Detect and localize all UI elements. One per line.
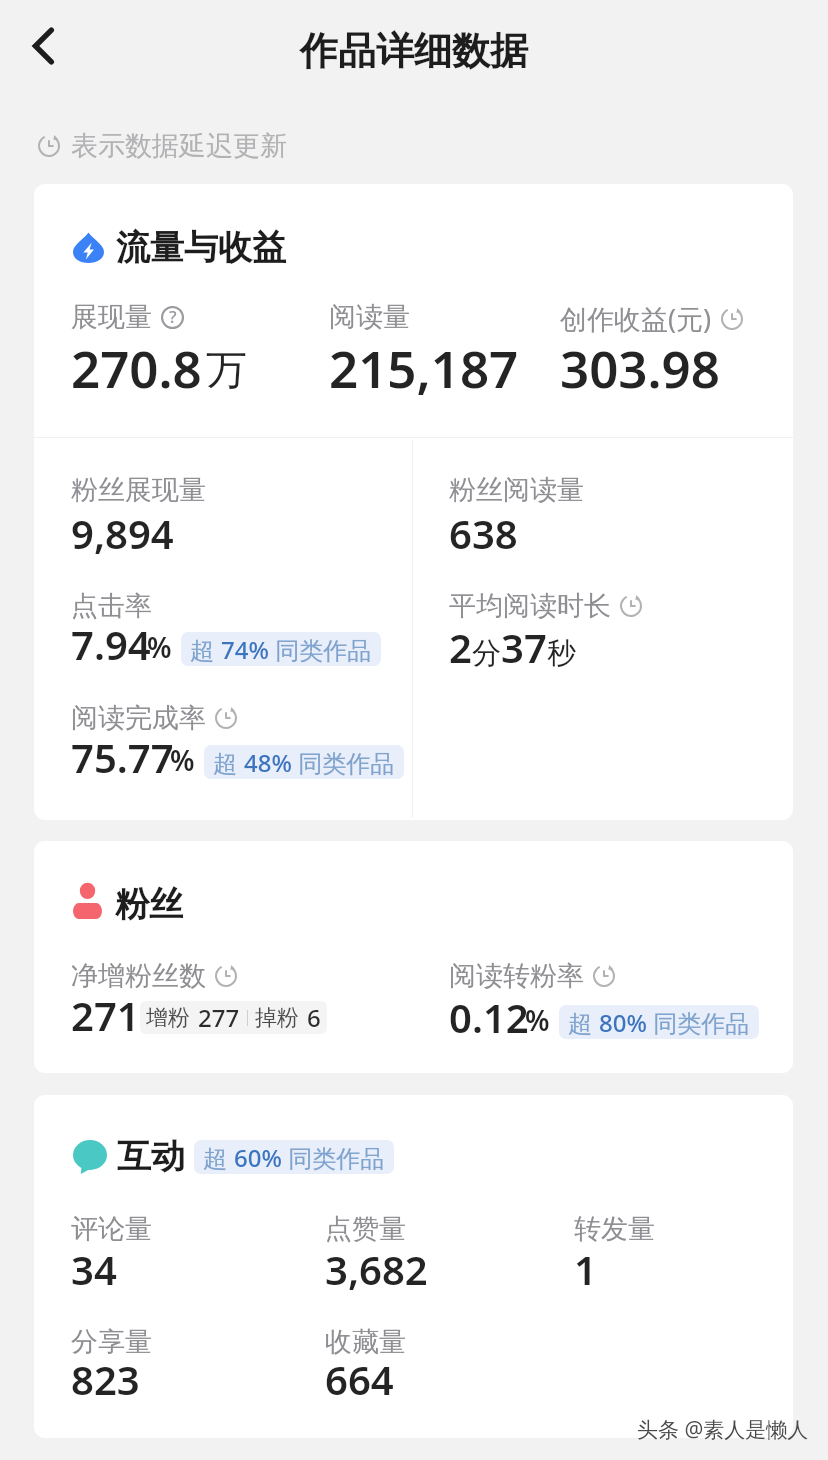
staticText: 增粉 [146, 1004, 190, 1032]
staticText: 同类作品 [282, 1141, 385, 1174]
staticText: 7.94 [71, 617, 151, 671]
button[interactable]: What is impressions [161, 306, 184, 329]
staticText: 823 [71, 1352, 140, 1406]
staticText: 收藏量 [325, 1325, 406, 1359]
staticText: 分享量 [71, 1325, 152, 1359]
staticText: 创作收益(元) [560, 300, 712, 337]
staticText: 0.12 [449, 990, 529, 1044]
staticText: 流量与收益 [116, 226, 286, 269]
staticText: 2 [449, 620, 472, 674]
staticText: 转发量 [574, 1212, 655, 1246]
staticText: 万 [206, 345, 247, 397]
staticText: 表示数据延迟更新 [71, 129, 287, 163]
staticText: 阅读完成率 [71, 701, 206, 735]
staticText: % [525, 1001, 550, 1039]
staticText: 75.77 [71, 730, 174, 784]
staticText: 超 [190, 633, 221, 666]
staticText: 6 [307, 1001, 321, 1034]
staticText: 互动 [117, 1135, 185, 1178]
staticText: 作品详细数据 [300, 27, 528, 75]
staticText: 粉丝展现量 [71, 473, 206, 507]
staticText: 阅读转粉率 [449, 959, 584, 993]
staticText: 48% [244, 746, 292, 779]
staticText: 粉丝阅读量 [449, 473, 584, 507]
staticText: 点击率 [71, 589, 152, 623]
staticText: 头条 @素人是懒人 [637, 1415, 809, 1444]
staticText: ? [169, 305, 177, 328]
staticText: 同类作品 [269, 633, 372, 666]
staticText: 秒 [547, 635, 576, 672]
staticText: 74% [221, 633, 269, 666]
staticText: 展现量 [71, 300, 152, 334]
staticText: 277 [198, 1001, 240, 1034]
staticText: 664 [325, 1352, 394, 1406]
staticText: 同类作品 [647, 1006, 750, 1039]
staticText: 60% [234, 1141, 282, 1174]
staticText: 3,682 [325, 1242, 428, 1296]
staticText: 点赞量 [325, 1212, 406, 1246]
staticText: 超 [203, 1141, 234, 1174]
staticText: 37 [501, 620, 547, 674]
staticText: 同类作品 [292, 746, 395, 779]
staticText: % [147, 628, 172, 666]
staticText: 271 [71, 988, 140, 1042]
staticText: 超 [213, 746, 244, 779]
staticText: 评论量 [71, 1212, 152, 1246]
staticText: 34 [71, 1242, 117, 1296]
staticText: 超 [568, 1006, 599, 1039]
staticText: 9,894 [71, 506, 174, 560]
button[interactable]: Back [15, 18, 71, 74]
staticText: 掉粉 [255, 1004, 299, 1032]
staticText: 阅读量 [329, 300, 410, 334]
staticText: 80% [599, 1006, 647, 1039]
staticText: 平均阅读时长 [449, 589, 611, 623]
staticText: 215,187 [329, 333, 519, 402]
staticText: 粉丝 [115, 883, 183, 926]
staticText: % [170, 741, 195, 779]
staticText: 638 [449, 506, 518, 560]
staticText: 303.98 [560, 333, 720, 402]
staticText: 270.8 [71, 333, 202, 402]
staticText: 净增粉丝数 [71, 959, 206, 993]
staticText: 1 [574, 1242, 597, 1296]
staticText: 分 [472, 635, 501, 672]
